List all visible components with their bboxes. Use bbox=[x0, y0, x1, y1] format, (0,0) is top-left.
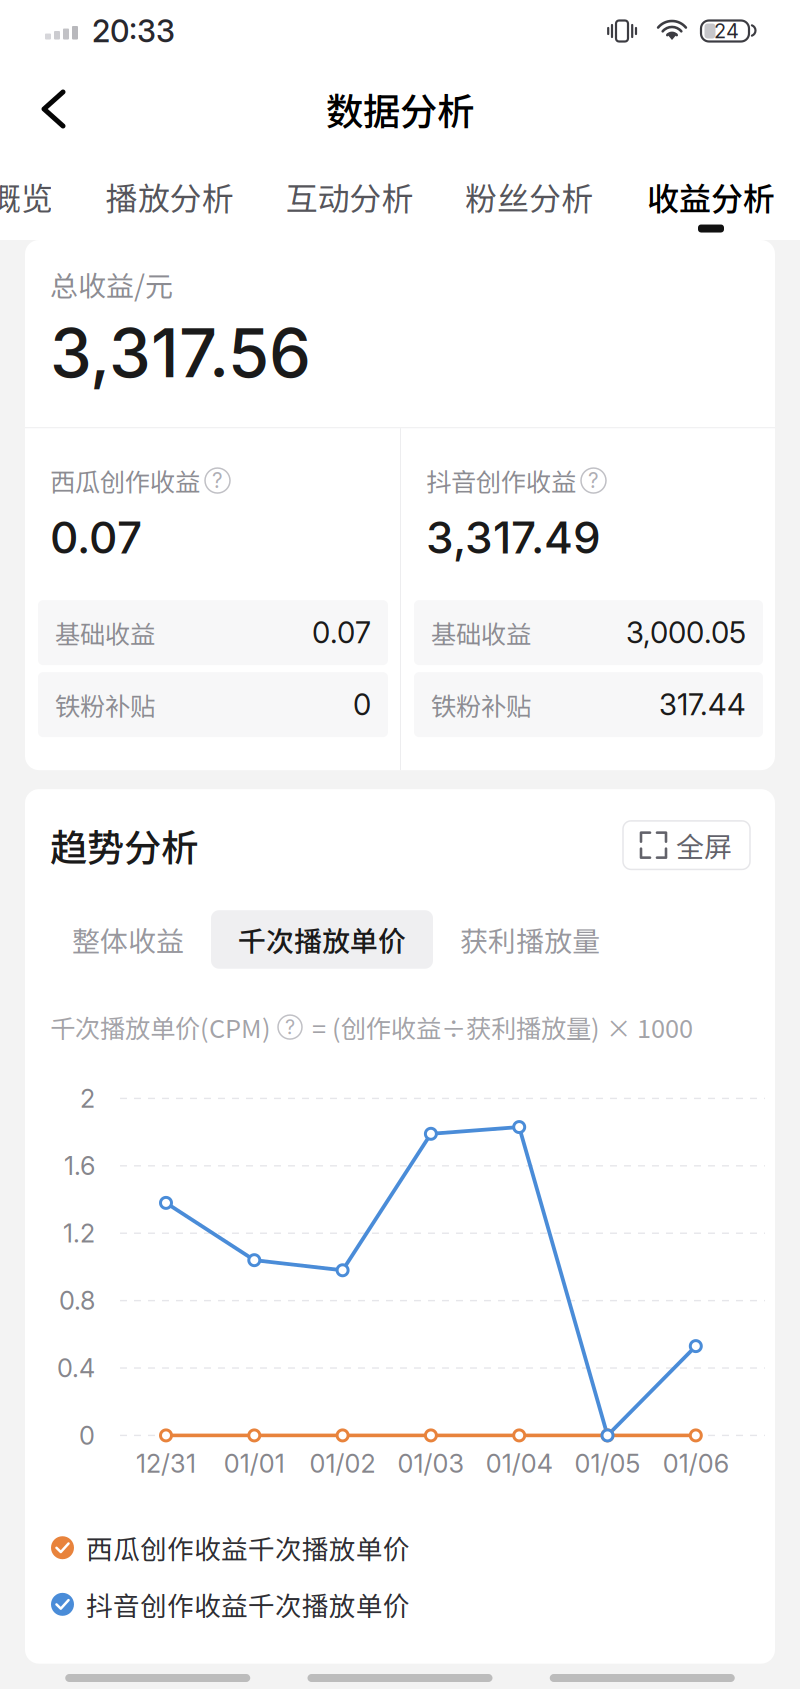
staticText: 基础收益 bbox=[431, 614, 531, 651]
staticText: 整体收益 bbox=[72, 919, 184, 960]
button[interactable]: 互动分析 bbox=[286, 163, 412, 232]
staticText: 抖音创作收益千次播放单价 bbox=[86, 1585, 410, 1624]
staticText: 粉丝分析 bbox=[465, 173, 593, 220]
staticText: 0 bbox=[79, 1420, 95, 1451]
staticText: 3,317.49 bbox=[426, 511, 601, 564]
staticText: 西瓜创作收益 bbox=[50, 462, 200, 499]
staticText: 西瓜创作收益千次播放单价 bbox=[86, 1528, 410, 1567]
staticText: 概览 bbox=[0, 173, 53, 220]
staticText: 数据分析 bbox=[326, 82, 474, 136]
button[interactable]: 播放分析 bbox=[107, 163, 233, 232]
button[interactable]: Back bbox=[16, 70, 89, 148]
staticText: 总收益/元 bbox=[50, 264, 173, 304]
staticText: 趋势分析 bbox=[50, 818, 198, 872]
button[interactable]: 千次播放单价 bbox=[211, 910, 433, 969]
staticText: ? bbox=[285, 1015, 295, 1039]
staticText: 2 bbox=[80, 1083, 95, 1114]
staticText: 1.2 bbox=[63, 1218, 95, 1249]
staticText: 3,000.05 bbox=[626, 615, 746, 650]
staticText: 0.8 bbox=[59, 1285, 95, 1316]
staticText: 收益分析 bbox=[647, 173, 775, 220]
staticText: 1.6 bbox=[64, 1150, 95, 1181]
button[interactable]: 整体收益 bbox=[45, 910, 211, 969]
button[interactable]: 获利播放量 bbox=[433, 910, 627, 969]
staticText: 千次播放单价 bbox=[238, 919, 406, 960]
staticText: 20:33 bbox=[92, 12, 175, 49]
button[interactable]: 全屏 bbox=[623, 821, 750, 869]
staticText: ? bbox=[588, 468, 599, 493]
button[interactable]: 收益分析 bbox=[646, 163, 776, 232]
staticText: 全屏 bbox=[676, 825, 732, 865]
staticText: 基础收益 bbox=[55, 614, 155, 651]
staticText: 317.44 bbox=[659, 687, 746, 722]
staticText: 0 bbox=[353, 687, 371, 722]
staticText: ? bbox=[212, 468, 223, 493]
button[interactable]: 概览 bbox=[0, 163, 53, 232]
staticText: 抖音创作收益 bbox=[426, 462, 576, 499]
staticText: 12/31 bbox=[136, 1448, 196, 1479]
staticText: 获利播放量 bbox=[460, 919, 600, 960]
staticText: 01/03 bbox=[397, 1448, 464, 1479]
staticText: 互动分析 bbox=[285, 173, 413, 220]
staticText: 24 bbox=[714, 19, 739, 43]
staticText: 0.4 bbox=[57, 1353, 95, 1383]
staticText: 铁粉补贴 bbox=[55, 686, 155, 723]
staticText: 3,317.56 bbox=[50, 312, 311, 393]
staticText: = (创作收益÷获利播放量) × 1000 bbox=[312, 1009, 693, 1045]
staticText: 01/02 bbox=[310, 1448, 376, 1479]
button[interactable]: 粉丝分析 bbox=[466, 163, 592, 232]
staticText: 0.07 bbox=[50, 511, 142, 564]
staticText: 01/05 bbox=[574, 1448, 640, 1479]
staticText: 播放分析 bbox=[106, 173, 234, 220]
staticText: 铁粉补贴 bbox=[431, 686, 531, 723]
staticText: 01/04 bbox=[486, 1448, 553, 1479]
staticText: 01/01 bbox=[224, 1448, 285, 1479]
staticText: 千次播放单价(CPM) bbox=[50, 1009, 271, 1045]
staticText: 01/06 bbox=[663, 1448, 729, 1479]
staticText: 0.07 bbox=[312, 615, 371, 650]
